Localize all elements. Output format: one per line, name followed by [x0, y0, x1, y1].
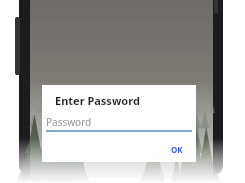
button[interactable]: OK	[165, 141, 189, 158]
staticText: Password	[46, 115, 92, 129]
staticText: OK	[171, 144, 183, 155]
staticText: Enter Password	[55, 93, 140, 108]
button[interactable]: Password	[46, 115, 192, 132]
